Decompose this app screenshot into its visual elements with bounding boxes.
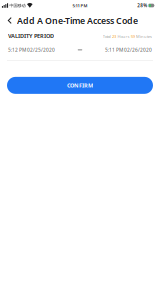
staticText: Hours: [117, 34, 129, 39]
staticText: Total: [103, 34, 111, 39]
button[interactable]: Back: [0, 11, 17, 30]
staticText: 23: [112, 34, 116, 39]
staticText: Minutes: [136, 34, 152, 39]
button[interactable]: CONFIRM: [7, 77, 153, 94]
staticText: CONFIRM: [67, 82, 93, 89]
staticText: 5:11 PM 02/26/2020: [105, 47, 152, 53]
staticText: VALIDITY PERIOD: [8, 32, 54, 40]
staticText: 中国移动: [9, 3, 25, 8]
staticText: 5:11 PM: [72, 3, 87, 8]
staticText: 5:12 PM 02/25/2020: [8, 47, 55, 53]
staticText: 59: [131, 34, 135, 39]
staticText: Add A One-Time Access Code: [17, 14, 138, 26]
staticText: 28%: [137, 2, 147, 9]
